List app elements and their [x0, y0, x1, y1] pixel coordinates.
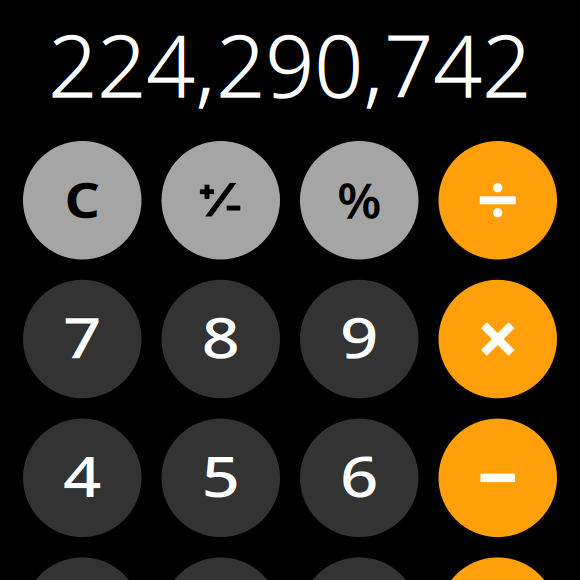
- button[interactable]: Minus: [438, 419, 557, 537]
- staticText: C: [67, 168, 98, 232]
- button[interactable]: %: [300, 141, 418, 259]
- staticText: 224,290,742: [48, 5, 531, 123]
- button[interactable]: 6: [300, 419, 418, 537]
- button[interactable]: 5: [161, 419, 280, 537]
- button[interactable]: 8: [161, 280, 280, 398]
- staticText: 7: [66, 299, 98, 374]
- staticText: 8: [205, 299, 237, 374]
- button[interactable]: Plus Minus: [161, 141, 280, 259]
- staticText: 5: [205, 438, 237, 513]
- button[interactable]: 9: [300, 280, 418, 398]
- button[interactable]: 7: [23, 280, 141, 398]
- staticText: %: [338, 168, 380, 232]
- staticText: 9: [343, 299, 375, 374]
- button[interactable]: Plus: [438, 557, 557, 580]
- staticText: 6: [343, 438, 375, 513]
- button[interactable]: Divide: [438, 141, 557, 259]
- button[interactable]: 3: [300, 557, 418, 580]
- button[interactable]: 2: [161, 557, 280, 580]
- button[interactable]: C: [23, 141, 141, 259]
- button[interactable]: Multiply: [438, 280, 557, 398]
- button[interactable]: 4: [23, 419, 141, 537]
- staticText: 4: [66, 438, 98, 513]
- button[interactable]: 1: [23, 557, 141, 580]
